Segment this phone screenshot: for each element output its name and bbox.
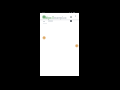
button[interactable]: Tabs (70, 16, 72, 18)
staticText: https://exampl.co (45, 16, 67, 20)
button[interactable]: More options (75, 15, 76, 17)
button[interactable] (40, 13, 79, 20)
button[interactable]: Site information (42, 15, 46, 19)
